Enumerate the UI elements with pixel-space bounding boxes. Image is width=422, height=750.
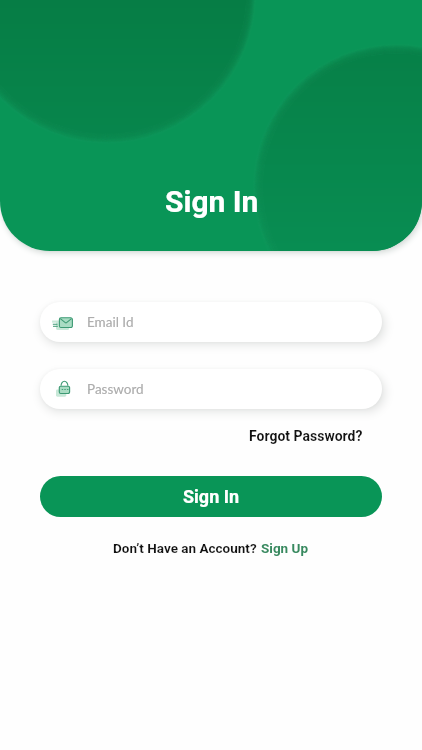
staticText: Don’t Have an Account? (113, 540, 261, 556)
button[interactable]: Email Id (40, 302, 382, 342)
staticText: Forgot Password? (249, 428, 363, 444)
staticText: Sign In (183, 486, 240, 507)
staticText: Sign Up (261, 540, 309, 556)
button[interactable]: Sign Up (261, 540, 309, 556)
button[interactable]: Forgot Password? (249, 428, 363, 444)
staticText: Sign In (165, 184, 259, 219)
staticText: Password (87, 381, 144, 397)
button[interactable]: Sign In (40, 476, 382, 517)
button[interactable]: Password (40, 369, 382, 409)
staticText: Email Id (87, 314, 134, 330)
